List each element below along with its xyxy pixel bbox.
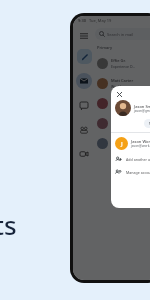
staticText: J [121,140,123,148]
button[interactable]: Matt Carter [95,73,150,93]
button[interactable]: Tom Hardy [95,133,150,153]
button[interactable]: Spaces [77,123,91,137]
staticText: Jason Smith [134,104,150,109]
staticText: Matt Carter [111,78,134,83]
staticText: Tue, May 19 [89,18,112,23]
staticText: Primary [97,45,113,50]
staticText: Add another account [126,157,150,162]
staticText: 9:30 [78,18,86,23]
button[interactable]: Menu [77,29,91,43]
staticText: Effie Gr. [111,58,126,63]
button[interactable]: Search in mail [95,28,150,40]
button[interactable]: Add another account [111,154,150,165]
button[interactable]: Effie Gr. [95,53,150,73]
staticText: Manage [149,121,150,126]
staticText: Lisa Moreno [111,98,135,103]
staticText: Weekly sync n… [111,84,137,89]
staticText: Offsite plan… [111,144,133,149]
button[interactable]: Meet [77,147,91,161]
button[interactable]: Jason Smith [111,100,150,116]
button[interactable]: Chat [77,99,91,113]
staticText: jason@work.com [131,144,150,148]
button[interactable]: Manage accounts [111,167,150,178]
button[interactable]: Lisa Moreno [95,93,150,113]
button[interactable]: Susan Lee [95,113,150,133]
staticText: Manage accounts [126,170,150,175]
staticText: Tom Hardy [111,138,132,143]
staticText: Search in mail [107,32,134,37]
staticText: Jason Work [131,139,150,144]
button[interactable]: J [111,137,150,150]
staticText: Experience D… [111,64,136,69]
button[interactable]: Close [115,90,123,98]
button[interactable]: Compose [77,49,92,64]
staticText: ts [0,207,17,242]
button[interactable]: Mail [76,73,92,89]
staticText: jason@gmail.com [134,109,150,113]
button[interactable]: Manage [144,119,150,128]
staticText: Product updat… [111,104,138,109]
